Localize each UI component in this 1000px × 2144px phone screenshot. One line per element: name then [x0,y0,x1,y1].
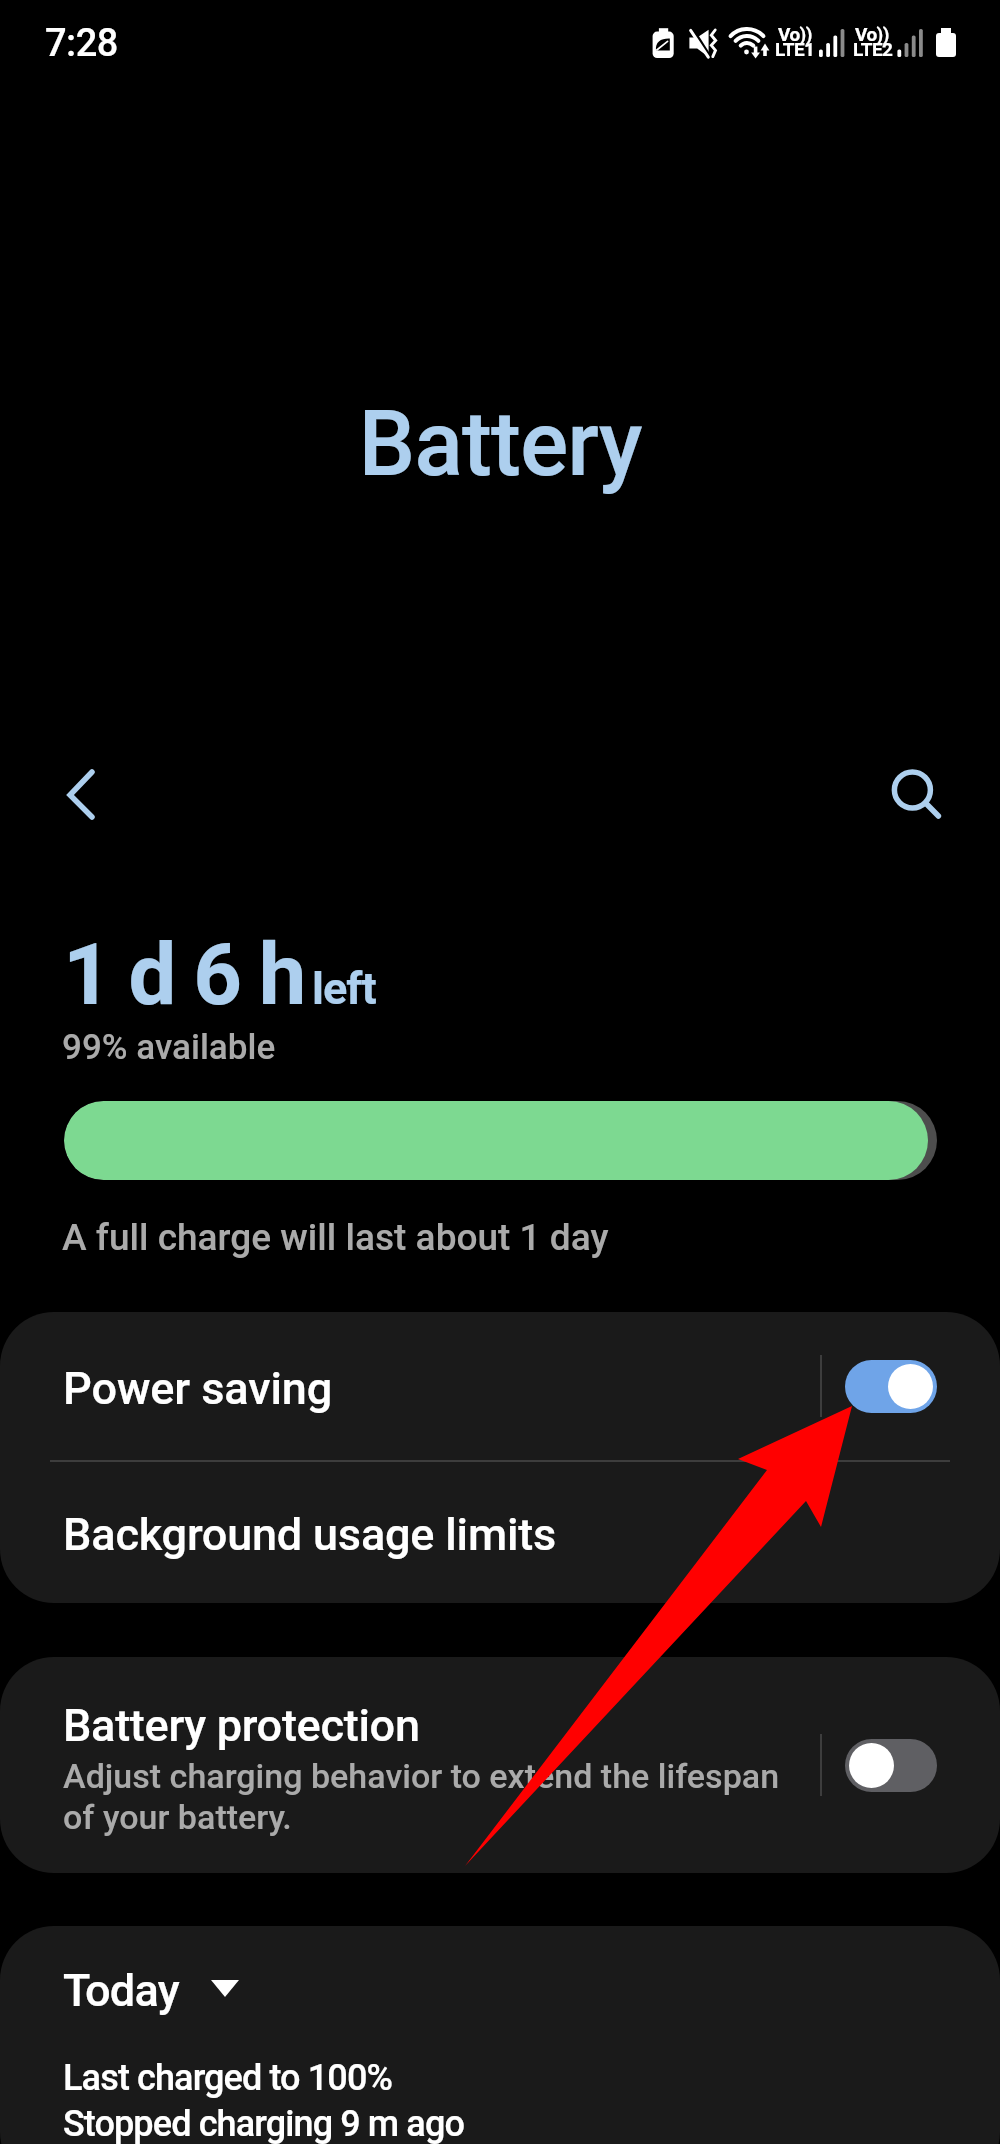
staticText: 99% available [62,1027,276,1068]
staticText: LTE1 [775,38,815,60]
staticText: Vo)) [855,23,889,45]
button[interactable]: Back [42,745,142,845]
staticText: 7:28 [45,21,118,66]
staticText: left [312,962,376,1015]
button[interactable]: Search [862,740,962,840]
staticText: Today [63,1964,179,2017]
staticText: Vo)) [778,23,812,45]
staticText: Battery [0,392,1000,497]
staticText: Last charged to 100% Stopped charging 9 … [63,2057,465,2144]
button[interactable]: Power saving on [845,1360,937,1413]
staticText: Battery protection [63,1699,420,1752]
button[interactable]: Battery protection off [845,1739,937,1792]
button[interactable]: Today [63,1964,239,2017]
staticText: Power saving [63,1362,333,1415]
staticText: 1 d 6 h [63,925,305,1025]
staticText: A full charge will last about 1 day [62,1216,609,1259]
button[interactable]: Battery protection [0,1657,1000,1873]
button[interactable]: Background usage limits [0,1462,1000,1603]
staticText: Adjust charging behavior to extend the l… [63,1756,780,1837]
staticText: LTE2 [853,38,893,60]
staticText: Background usage limits [63,1508,557,1561]
button[interactable]: Power saving [0,1312,1000,1460]
